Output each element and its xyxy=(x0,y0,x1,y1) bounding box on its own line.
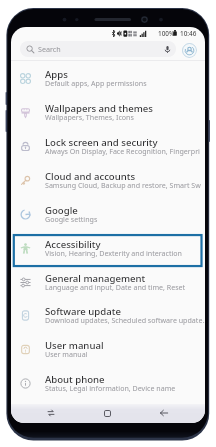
staticText: Samsung Cloud, Backup and restore, Smart… xyxy=(45,180,201,190)
staticText: Software update xyxy=(45,305,121,318)
button[interactable]: Google xyxy=(11,198,205,232)
staticText: User manual xyxy=(45,349,88,359)
staticText: Google settings xyxy=(45,214,98,224)
staticText: General management xyxy=(45,272,146,285)
staticText: Language and input, Date and time, Reset xyxy=(45,282,186,292)
button[interactable]: Back xyxy=(155,404,173,422)
staticText: Default apps, App permissions xyxy=(45,78,147,88)
button[interactable]: Software update xyxy=(11,299,205,333)
staticText: Wallpapers, Themes, Icons xyxy=(45,112,134,122)
staticText: User manual xyxy=(45,339,104,352)
button[interactable]: Apps xyxy=(11,62,205,96)
button[interactable]: User manual xyxy=(11,333,205,367)
staticText: Apps xyxy=(45,68,68,81)
staticText: Wallpapers and themes xyxy=(45,102,154,115)
button[interactable]: Account xyxy=(181,42,197,58)
staticText: Accessibility xyxy=(45,238,101,251)
staticText: Status, Legal information, Device name xyxy=(45,383,176,393)
staticText: Google xyxy=(45,204,78,217)
staticText: 10:46 xyxy=(180,29,197,38)
button[interactable]: Recent apps xyxy=(42,404,60,422)
staticText: 100% xyxy=(158,29,175,38)
button[interactable]: Cloud and accounts xyxy=(11,164,205,198)
button[interactable]: Wallpapers and themes xyxy=(11,96,205,130)
button[interactable]: General management xyxy=(11,266,205,300)
staticText: Always On Display, Face Recognition, Fin… xyxy=(45,146,200,156)
staticText: Lock screen and security xyxy=(45,136,158,149)
staticText: Download updates, Scheduled software upd… xyxy=(45,315,205,325)
staticText: About phone xyxy=(45,373,105,386)
button[interactable]: Lock screen and security xyxy=(11,130,205,164)
staticText: Vision, Hearing, Dexterity and interacti… xyxy=(45,248,182,258)
staticText: Search xyxy=(38,44,61,54)
button[interactable]: About phone xyxy=(11,367,205,401)
button[interactable]: Accessibility xyxy=(11,232,205,266)
button[interactable]: Home xyxy=(98,404,116,422)
staticText: Cloud and accounts xyxy=(45,170,136,183)
button[interactable]: Search xyxy=(20,41,176,57)
